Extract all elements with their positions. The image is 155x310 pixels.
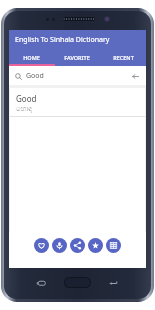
button[interactable]: RECENT [100,49,146,66]
staticText: Good [26,71,44,81]
button[interactable]: Favorite [34,238,49,253]
button[interactable]: Good [10,88,145,116]
button[interactable]: FAVORITE [54,49,100,66]
button[interactable]: Share [70,238,85,253]
staticText: RECENT [113,54,134,61]
staticText: හොඳ [16,105,33,112]
staticText: Good [16,93,37,104]
staticText: HOME [23,54,40,61]
button[interactable]: Good [9,66,146,85]
staticText: FAVORITE [64,54,90,61]
button[interactable]: Add to favorites [88,238,103,253]
button[interactable]: Keypad [106,238,121,253]
button[interactable]: HOME [9,49,54,66]
staticText: English To Sinhala Dictionary [15,35,110,45]
button[interactable]: Back [131,72,140,81]
button[interactable]: Speak [52,238,67,253]
